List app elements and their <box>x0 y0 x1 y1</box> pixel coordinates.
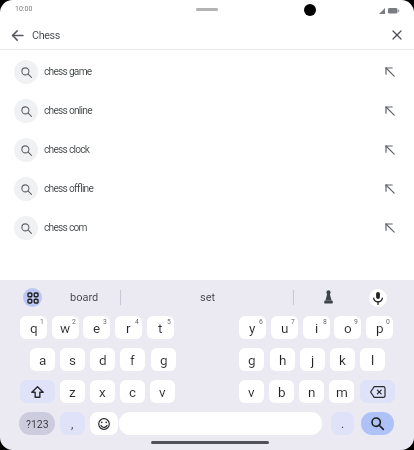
staticText: f <box>130 352 135 368</box>
button[interactable]: chess online <box>0 91 414 130</box>
staticText: board <box>70 291 99 304</box>
staticText: o <box>344 320 352 336</box>
staticText: 1 <box>40 318 44 326</box>
staticText: t <box>158 320 163 336</box>
button[interactable]: k <box>330 348 355 371</box>
staticText: d <box>99 352 107 368</box>
staticText: q <box>30 320 38 336</box>
staticText: m <box>336 384 348 400</box>
button[interactable]: , <box>60 412 85 435</box>
button[interactable]: h <box>270 348 295 371</box>
button[interactable]: set <box>182 287 234 307</box>
button[interactable]: m <box>329 380 354 403</box>
staticText: 9 <box>354 318 358 326</box>
button[interactable]: w <box>52 316 79 339</box>
staticText: chess com <box>44 222 87 234</box>
staticText: n <box>308 384 316 400</box>
staticText: l <box>371 352 375 368</box>
button[interactable] <box>369 289 387 307</box>
staticText: 8 <box>323 318 327 326</box>
staticText: 5 <box>167 318 171 326</box>
staticText: u <box>281 320 289 336</box>
button[interactable]: chess com <box>0 208 414 247</box>
staticText: r <box>126 320 131 336</box>
button[interactable]: ?123 <box>19 412 55 435</box>
staticText: 10:00 <box>15 5 33 13</box>
staticText: g <box>160 352 168 368</box>
staticText: e <box>93 320 101 336</box>
staticText: p <box>376 320 384 336</box>
staticText: chess offline <box>44 183 94 195</box>
staticText: 6 <box>259 318 263 326</box>
button[interactable] <box>360 380 395 403</box>
staticText: i <box>315 320 319 336</box>
staticText: . <box>341 417 345 431</box>
staticText: set <box>200 291 216 304</box>
staticText: a <box>39 352 47 368</box>
staticText: j <box>311 352 315 368</box>
staticText: chess game <box>44 66 92 78</box>
button[interactable]: v <box>150 380 175 403</box>
button[interactable]: t <box>147 316 174 339</box>
staticText: 4 <box>135 318 139 326</box>
button[interactable]: n <box>299 380 324 403</box>
button[interactable]: d <box>90 348 115 371</box>
button[interactable]: g <box>239 348 264 371</box>
staticText: y <box>249 320 256 336</box>
button[interactable]: board <box>56 287 112 307</box>
staticText: w <box>60 320 71 336</box>
button[interactable]: . <box>331 412 354 435</box>
staticText: v <box>159 384 166 400</box>
button[interactable]: b <box>269 380 294 403</box>
button[interactable]: s <box>60 348 85 371</box>
button[interactable] <box>23 288 42 307</box>
button[interactable] <box>318 287 339 307</box>
button[interactable] <box>388 26 406 44</box>
button[interactable]: l <box>360 348 385 371</box>
button[interactable]: chess clock <box>0 130 414 169</box>
button[interactable]: i <box>303 316 330 339</box>
button[interactable]: x <box>90 380 115 403</box>
staticText: 3 <box>103 318 107 326</box>
staticText: 0 <box>386 318 390 326</box>
staticText: ?123 <box>26 418 49 430</box>
button[interactable]: a <box>30 348 55 371</box>
staticText: 7 <box>291 318 295 326</box>
staticText: g <box>248 352 256 368</box>
button[interactable]: r <box>115 316 142 339</box>
button[interactable]: u <box>271 316 298 339</box>
staticText: h <box>279 352 287 368</box>
button[interactable]: f <box>120 348 145 371</box>
button[interactable]: z <box>60 380 85 403</box>
button[interactable]: j <box>300 348 325 371</box>
staticText: chess online <box>44 105 92 117</box>
button[interactable]: c <box>120 380 145 403</box>
button[interactable]: p <box>366 316 393 339</box>
button[interactable] <box>20 380 55 403</box>
staticText: v <box>248 384 255 400</box>
staticText: s <box>69 352 76 368</box>
staticText: b <box>278 384 286 400</box>
staticText: k <box>339 352 346 368</box>
button[interactable] <box>361 412 394 435</box>
button[interactable]: chess offline <box>0 169 414 208</box>
button[interactable]: q <box>20 316 47 339</box>
button[interactable]: chess game <box>0 52 414 91</box>
button[interactable] <box>90 412 118 435</box>
staticText: chess clock <box>44 144 90 156</box>
button[interactable]: y <box>239 316 266 339</box>
staticText: c <box>129 384 137 400</box>
button[interactable]: o <box>334 316 361 339</box>
staticText: , <box>71 417 74 431</box>
button[interactable]: v <box>239 380 264 403</box>
staticText: 2 <box>72 318 76 326</box>
button[interactable] <box>6 25 28 45</box>
staticText: z <box>69 384 76 400</box>
staticText: Chess <box>32 29 60 42</box>
button[interactable]: g <box>151 348 176 371</box>
staticText: x <box>99 384 106 400</box>
button[interactable]: e <box>83 316 110 339</box>
